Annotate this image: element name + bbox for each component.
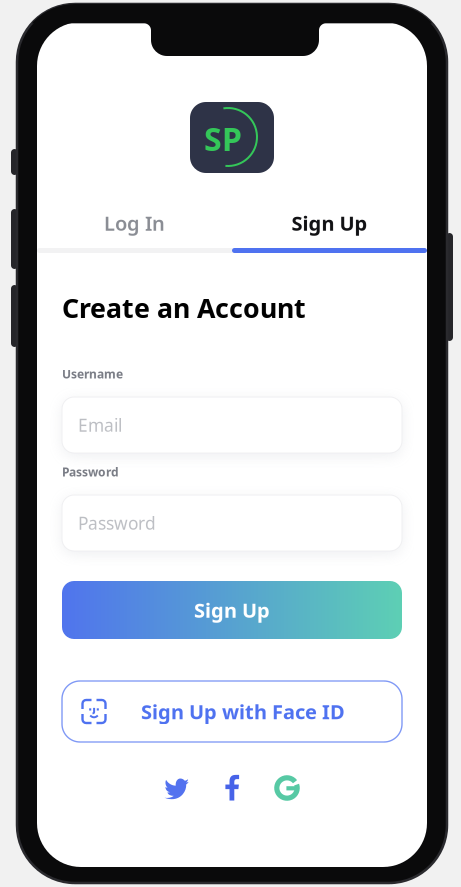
- staticText: Log In: [104, 210, 165, 236]
- button[interactable]: Sign Up: [62, 581, 402, 639]
- staticText: Email: [78, 413, 122, 436]
- button[interactable]: Log In: [37, 195, 232, 251]
- staticText: Password: [62, 464, 119, 480]
- staticText: Sign Up: [291, 210, 367, 236]
- button[interactable]: Sign Up: [232, 195, 427, 251]
- staticText: Sign Up: [194, 597, 270, 623]
- staticText: Sign Up with Face ID: [141, 698, 345, 725]
- button[interactable]: Sign Up with Face ID: [62, 681, 402, 742]
- button[interactable]: Sign up with Facebook: [212, 774, 252, 802]
- button[interactable]: Sign up with Google: [267, 774, 307, 802]
- staticText: Password: [78, 511, 156, 534]
- button[interactable]: Sign up with Twitter: [157, 774, 197, 802]
- staticText: SP: [204, 117, 242, 160]
- staticText: Username: [62, 366, 123, 382]
- staticText: Create an Account: [62, 290, 306, 325]
